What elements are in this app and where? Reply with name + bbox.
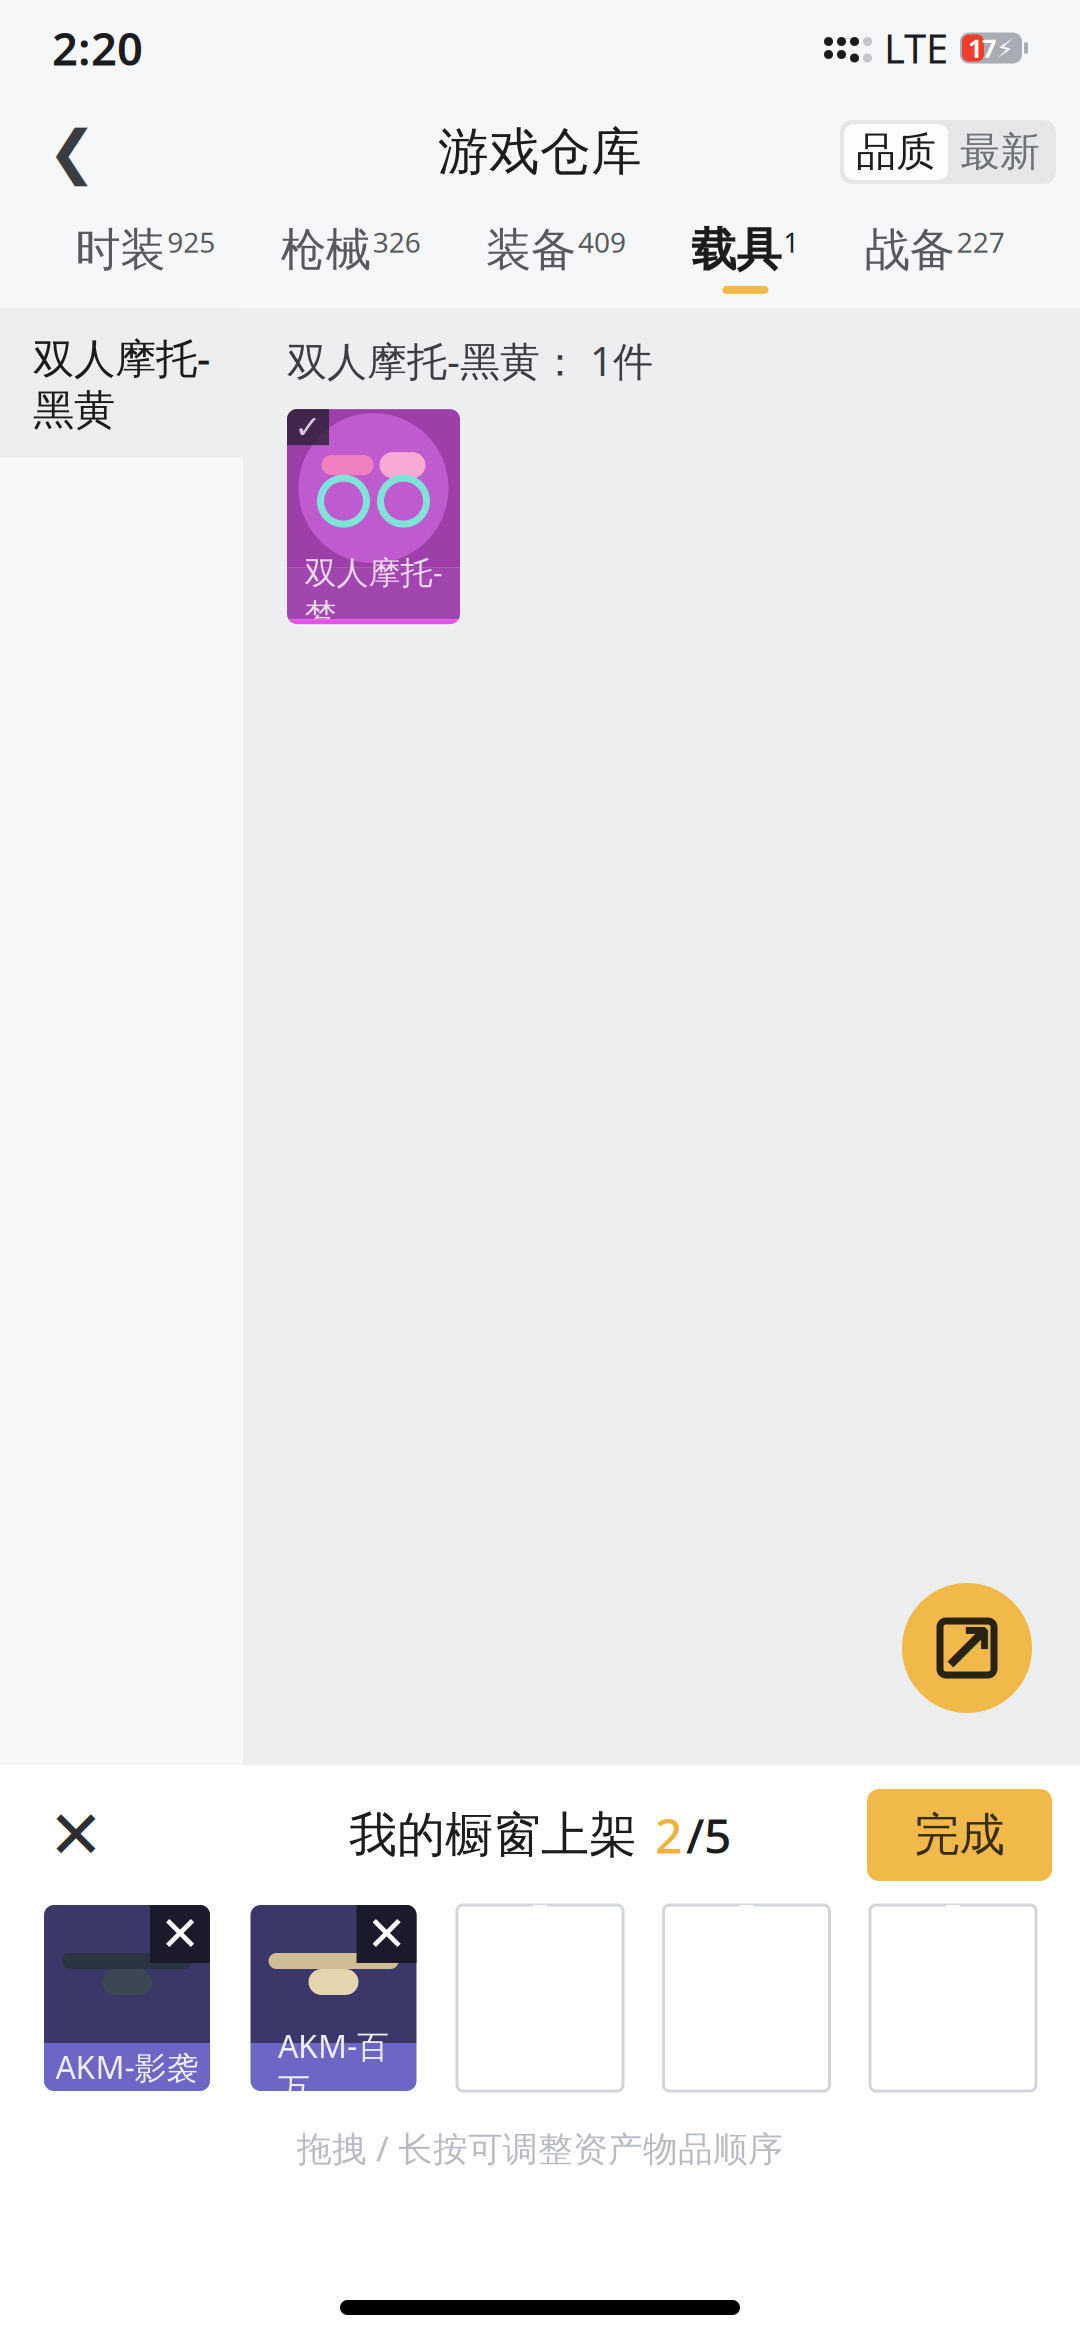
button[interactable]: 品质 (840, 120, 1056, 184)
button[interactable]: 空栏位 (663, 1905, 829, 2091)
staticText: 227 (957, 223, 1005, 261)
staticText: 2:20 (52, 18, 143, 78)
button[interactable]: 返回 (24, 104, 120, 200)
staticText: ↗ (938, 1609, 996, 1687)
staticText: /5 (686, 1803, 731, 1867)
staticText: 枪械 (281, 222, 371, 278)
button[interactable]: 载具 (691, 212, 799, 304)
staticText: ✕ (48, 1797, 104, 1873)
staticText: 品质 (856, 127, 936, 176)
staticText: 时装 (75, 222, 165, 278)
staticText: 装备 (486, 222, 576, 278)
staticText: 最新 (960, 127, 1040, 176)
staticText: AKM-影袭 (55, 2046, 198, 2088)
button[interactable]: 空栏位 (457, 1905, 623, 2091)
staticText: 载具 (691, 222, 781, 278)
staticText: 双人摩托-黑黄 (33, 330, 210, 436)
button[interactable]: ✕ (44, 1905, 210, 2091)
staticText: 1 (783, 223, 799, 261)
button[interactable]: 枪械 (281, 212, 421, 304)
staticText: 17⚡︎ (968, 31, 1014, 65)
button[interactable]: 装备 (486, 212, 626, 304)
staticText: 326 (373, 223, 421, 261)
button[interactable]: 完成 (867, 1789, 1052, 1881)
button[interactable]: 分享 (902, 1583, 1032, 1713)
staticText: 完成 (914, 1807, 1004, 1863)
staticText: ✕ (160, 1907, 200, 1961)
button[interactable]: 战备 (865, 212, 1005, 304)
button[interactable]: 关闭 (28, 1787, 124, 1883)
button[interactable]: ✓ (287, 409, 460, 624)
staticText: 游戏仓库 (438, 121, 642, 183)
staticText: 战备 (865, 222, 955, 278)
staticText: 2 (655, 1803, 682, 1867)
button[interactable]: 双人摩托-黑黄 (0, 308, 243, 458)
staticText: 双人摩托-梦… (304, 551, 442, 636)
staticText: ✓ (294, 409, 321, 445)
button[interactable]: 空栏位 (870, 1905, 1036, 2091)
staticText: ✕ (366, 1907, 406, 1961)
staticText: ❮ (47, 119, 96, 185)
staticText: 925 (167, 223, 215, 261)
button[interactable]: ✕ (250, 1905, 416, 2091)
button[interactable]: 时装 (75, 212, 215, 304)
staticText: AKM-百万… (278, 2024, 389, 2110)
staticText: LTE (884, 21, 948, 74)
staticText: 拖拽 / 长按可调整资产物品顺序 (297, 2125, 783, 2171)
staticText: 我的橱窗上架 (349, 1805, 651, 1864)
staticText: 双人摩托-黑黄： 1件 (287, 334, 653, 387)
staticText: 409 (578, 223, 626, 261)
